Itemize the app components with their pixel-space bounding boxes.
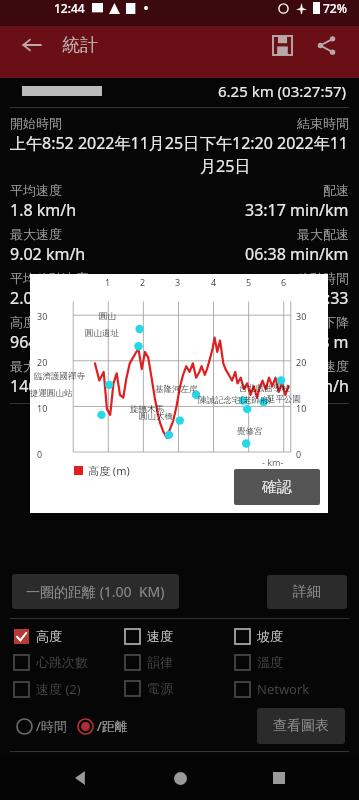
staticText: 速度 (2): [36, 680, 81, 698]
staticText: 高度 (m): [88, 463, 130, 478]
staticText: 10: [37, 402, 48, 414]
button[interactable]: 查看圖表: [257, 708, 345, 744]
staticText: /距離: [97, 717, 128, 735]
button[interactable]: 一圈的距離 (1.00 KM): [12, 574, 179, 609]
staticText: 開始時間: [10, 115, 62, 131]
staticText: 20: [37, 356, 48, 368]
staticText: 4: [211, 276, 217, 288]
staticText: 最大上升速度: [10, 358, 88, 374]
staticText: 基隆河左岸: [155, 384, 198, 395]
staticText: 韻律: [147, 654, 173, 670]
staticText: 坡度: [257, 628, 283, 644]
button[interactable]: Home: [160, 758, 200, 798]
staticText: 33:17 min/km: [245, 199, 349, 221]
staticText: 9.02 km/h: [10, 243, 86, 265]
button[interactable]: 坡度: [235, 626, 345, 646]
staticText: 確認: [262, 478, 292, 497]
staticText: 配速: [323, 182, 349, 198]
staticText: Network: [257, 680, 310, 698]
staticText: 06:38 min/km: [245, 243, 349, 265]
staticText: 詳細: [293, 583, 321, 601]
staticText: 圓山大橋: [139, 411, 173, 422]
button[interactable]: Recents: [259, 758, 299, 798]
staticText: 台北戲曲學校: [239, 383, 290, 394]
staticText: 查看圖表: [273, 717, 329, 735]
staticText: 圓山: [99, 311, 116, 322]
staticText: 1: [105, 276, 111, 288]
staticText: 陳誠記念宅(老師府): [198, 394, 272, 406]
staticText: 10: [296, 402, 307, 414]
button[interactable]: 速度: [125, 626, 235, 646]
staticText: 5: [246, 276, 252, 288]
staticText: /時間: [36, 717, 67, 735]
staticText: 6.25 km (03:27:57): [218, 81, 347, 101]
staticText: 1.8 km/h: [10, 199, 77, 221]
button[interactable]: 心跳次數: [14, 652, 125, 672]
button[interactable]: Share: [307, 26, 345, 64]
staticText: 3: [175, 276, 181, 288]
staticText: 6: [281, 276, 287, 288]
button[interactable]: /時間: [14, 713, 69, 739]
staticText: 溫度: [257, 654, 283, 670]
staticText: 最大速度: [10, 226, 62, 242]
staticText: 0: [37, 448, 43, 460]
staticText: 移動時間: [297, 270, 349, 286]
button[interactable]: Back: [60, 758, 100, 798]
staticText: 臨濟護國禪寺: [34, 371, 85, 382]
staticText: 0: [296, 448, 302, 460]
staticText: 平均速度: [10, 182, 62, 198]
button[interactable]: Network: [235, 678, 345, 700]
staticText: 旋轉木馬: [130, 404, 164, 415]
button[interactable]: Back: [14, 28, 48, 62]
staticText: 心跳次數: [36, 654, 88, 670]
staticText: 最大配速: [297, 226, 349, 242]
button[interactable]: Save: [263, 26, 301, 64]
staticText: 結束時間: [297, 115, 349, 131]
button[interactable]: 溫度: [235, 652, 345, 672]
staticText: 上午8:52 2022年11月25日: [10, 132, 200, 154]
staticText: 電源: [147, 680, 173, 696]
staticText: 高度: [36, 628, 62, 644]
staticText: 2.0 km/h: [10, 287, 77, 309]
staticText: 捷運圓山站: [30, 388, 73, 399]
staticText: 72.99 m/h: [273, 375, 349, 397]
staticText: 30: [296, 310, 307, 322]
staticText: - km-: [262, 456, 284, 468]
button[interactable]: 速度 (2): [14, 678, 125, 700]
staticText: 20: [296, 356, 307, 368]
staticText: 12:44: [54, 0, 85, 16]
button[interactable]: 電源: [125, 678, 235, 698]
staticText: 一圈的距離 (1.00 KM): [26, 582, 165, 601]
staticText: 高度上升: [10, 314, 62, 330]
staticText: 958 m: [302, 331, 349, 353]
staticText: 延平公園: [267, 394, 301, 405]
staticText: 最大下降速度: [271, 358, 349, 374]
staticText: 覺修宮: [237, 426, 263, 437]
staticText: 平均移動速度: [10, 270, 88, 286]
staticText: 964 m: [10, 331, 57, 353]
button[interactable]: 確認: [234, 469, 320, 505]
staticText: 146.19 m/h: [10, 375, 96, 397]
staticText: 高度下降: [297, 314, 349, 330]
button[interactable]: 詳細: [267, 575, 347, 609]
staticText: 統計: [62, 34, 98, 57]
button[interactable]: 韻律: [125, 652, 235, 672]
staticText: 速度: [147, 628, 173, 644]
staticText: 下午12:20 2022年11月25日: [200, 132, 349, 177]
staticText: 72%: [323, 0, 347, 16]
staticText: 圓山遺址: [85, 328, 119, 339]
staticText: 03:21:33: [285, 287, 349, 309]
staticText: 2: [140, 276, 146, 288]
button[interactable]: 高度: [14, 626, 125, 646]
button[interactable]: /距離: [75, 713, 130, 739]
staticText: 30: [37, 310, 48, 322]
